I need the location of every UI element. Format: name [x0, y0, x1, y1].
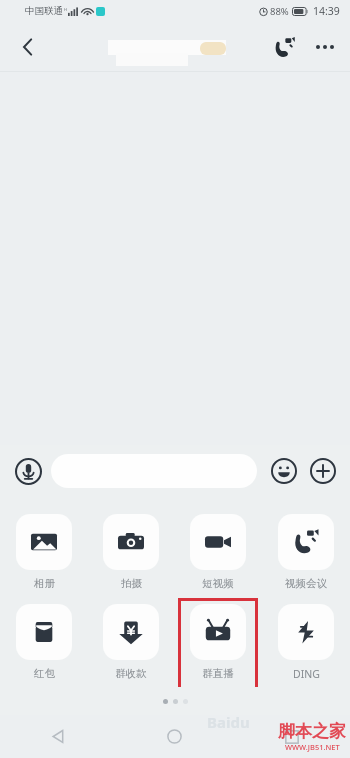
button[interactable]: DING — [273, 604, 339, 681]
button[interactable]: Back — [8, 27, 48, 67]
button[interactable]: 拍摄 — [98, 514, 164, 590]
button[interactable]: Recents — [233, 715, 350, 758]
button[interactable]: 相册 — [11, 514, 77, 590]
staticText: 相册 — [34, 577, 55, 590]
staticText: 群收款 — [115, 667, 147, 680]
staticText: DING — [293, 667, 320, 681]
staticText: 视频会议 — [285, 577, 327, 590]
button[interactable]: 视频会议 — [273, 514, 339, 590]
button[interactable]: More options — [304, 26, 346, 68]
button[interactable]: Video call — [262, 26, 304, 68]
staticText: 14:39 — [313, 4, 340, 18]
button[interactable] — [51, 454, 257, 488]
button[interactable]: 红包 — [11, 604, 77, 680]
button[interactable]: Back — [0, 715, 116, 758]
button[interactable]: 短视频 — [185, 514, 251, 590]
staticText: 脚本之家 — [278, 721, 346, 742]
button[interactable]: 群直播 — [185, 604, 251, 680]
staticText: 拍摄 — [121, 577, 142, 590]
button[interactable]: More — [304, 452, 342, 490]
staticText: 88% — [270, 5, 289, 18]
staticText: ᴴ — [64, 7, 67, 15]
button[interactable]: Emoji — [265, 452, 303, 490]
staticText: 红包 — [34, 667, 55, 680]
staticText: 群直播 — [202, 667, 234, 680]
staticText: 短视频 — [202, 577, 234, 590]
button[interactable]: 群收款 — [98, 604, 164, 680]
button[interactable]: Voice message — [8, 451, 48, 491]
staticText: 中国联通 — [25, 5, 63, 17]
staticText: WWW.JB51.NET — [285, 742, 340, 752]
staticText: Baidu — [207, 712, 250, 732]
button[interactable]: Home — [116, 715, 233, 758]
